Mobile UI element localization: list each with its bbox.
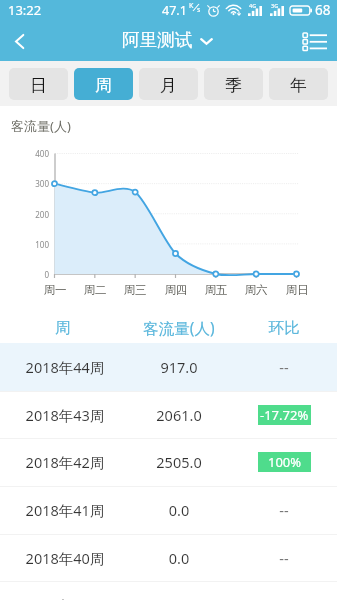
staticText: 917.0 <box>114 357 244 377</box>
staticText: 周三 <box>118 283 152 297</box>
button[interactable]: 2018年40周 <box>0 534 337 582</box>
staticText: 2018年42周 <box>0 452 130 472</box>
staticText: K <box>189 1 194 11</box>
staticText: 300 <box>0 178 49 189</box>
staticText: 100% <box>268 453 302 471</box>
staticText: 2505.0 <box>114 452 244 472</box>
staticText: 200 <box>0 209 49 220</box>
staticText: 4G <box>249 2 257 9</box>
staticText: 周 <box>0 318 128 338</box>
staticText: 月 <box>160 75 177 96</box>
button[interactable]: 周 <box>74 68 133 100</box>
staticText: 2018年39周 <box>0 595 130 600</box>
staticText: -- <box>219 548 337 568</box>
staticText: 周六 <box>239 283 273 297</box>
staticText: 日 <box>30 75 47 96</box>
button[interactable]: 2018年41周 <box>0 486 337 534</box>
staticText: 0 <box>0 269 49 280</box>
staticText: 周日 <box>280 283 314 297</box>
staticText: 47.1 <box>162 2 187 19</box>
button[interactable]: 阿里测试 <box>122 30 213 52</box>
button[interactable]: Back <box>2 21 36 61</box>
staticText: 客流量(人) <box>114 317 244 338</box>
staticText: 周五 <box>199 283 233 297</box>
staticText: 2018年41周 <box>0 500 130 520</box>
staticText: 400 <box>0 148 49 159</box>
staticText: 环比 <box>219 318 337 338</box>
staticText: 2018年40周 <box>0 548 130 568</box>
staticText: 0.0 <box>114 500 244 520</box>
staticText: 周 <box>95 75 112 96</box>
staticText: 13:22 <box>8 1 42 19</box>
button[interactable]: Menu <box>295 21 337 61</box>
button[interactable]: 年 <box>269 68 328 100</box>
button[interactable]: 月 <box>139 68 198 100</box>
staticText: 100 <box>0 239 49 250</box>
button[interactable]: 日 <box>9 68 68 100</box>
staticText: 季 <box>225 75 242 96</box>
button[interactable]: 2018年42周 <box>0 438 337 486</box>
staticText: 周一 <box>38 283 72 297</box>
staticText: 2018年43周 <box>0 405 130 425</box>
staticText: 周二 <box>78 283 112 297</box>
staticText: -- <box>219 500 337 520</box>
staticText: 2061.0 <box>114 405 244 425</box>
staticText: 年 <box>290 75 307 96</box>
staticText: 2018年44周 <box>0 357 130 377</box>
staticText: 3G <box>271 2 279 9</box>
staticText: 周四 <box>159 283 193 297</box>
staticText: -- <box>219 357 337 377</box>
staticText: s <box>197 5 201 15</box>
staticText: -17.72% <box>260 406 309 424</box>
staticText: 阿里测试 <box>122 29 193 51</box>
staticText: 客流量(人) <box>11 117 71 135</box>
staticText: 0.0 <box>114 548 244 568</box>
button[interactable]: 2018年44周 <box>0 343 337 391</box>
button[interactable]: 2018年43周 <box>0 391 337 439</box>
button[interactable]: 季 <box>204 68 263 100</box>
staticText: 68 <box>315 1 331 19</box>
button[interactable]: 2018年39周 <box>0 581 337 600</box>
